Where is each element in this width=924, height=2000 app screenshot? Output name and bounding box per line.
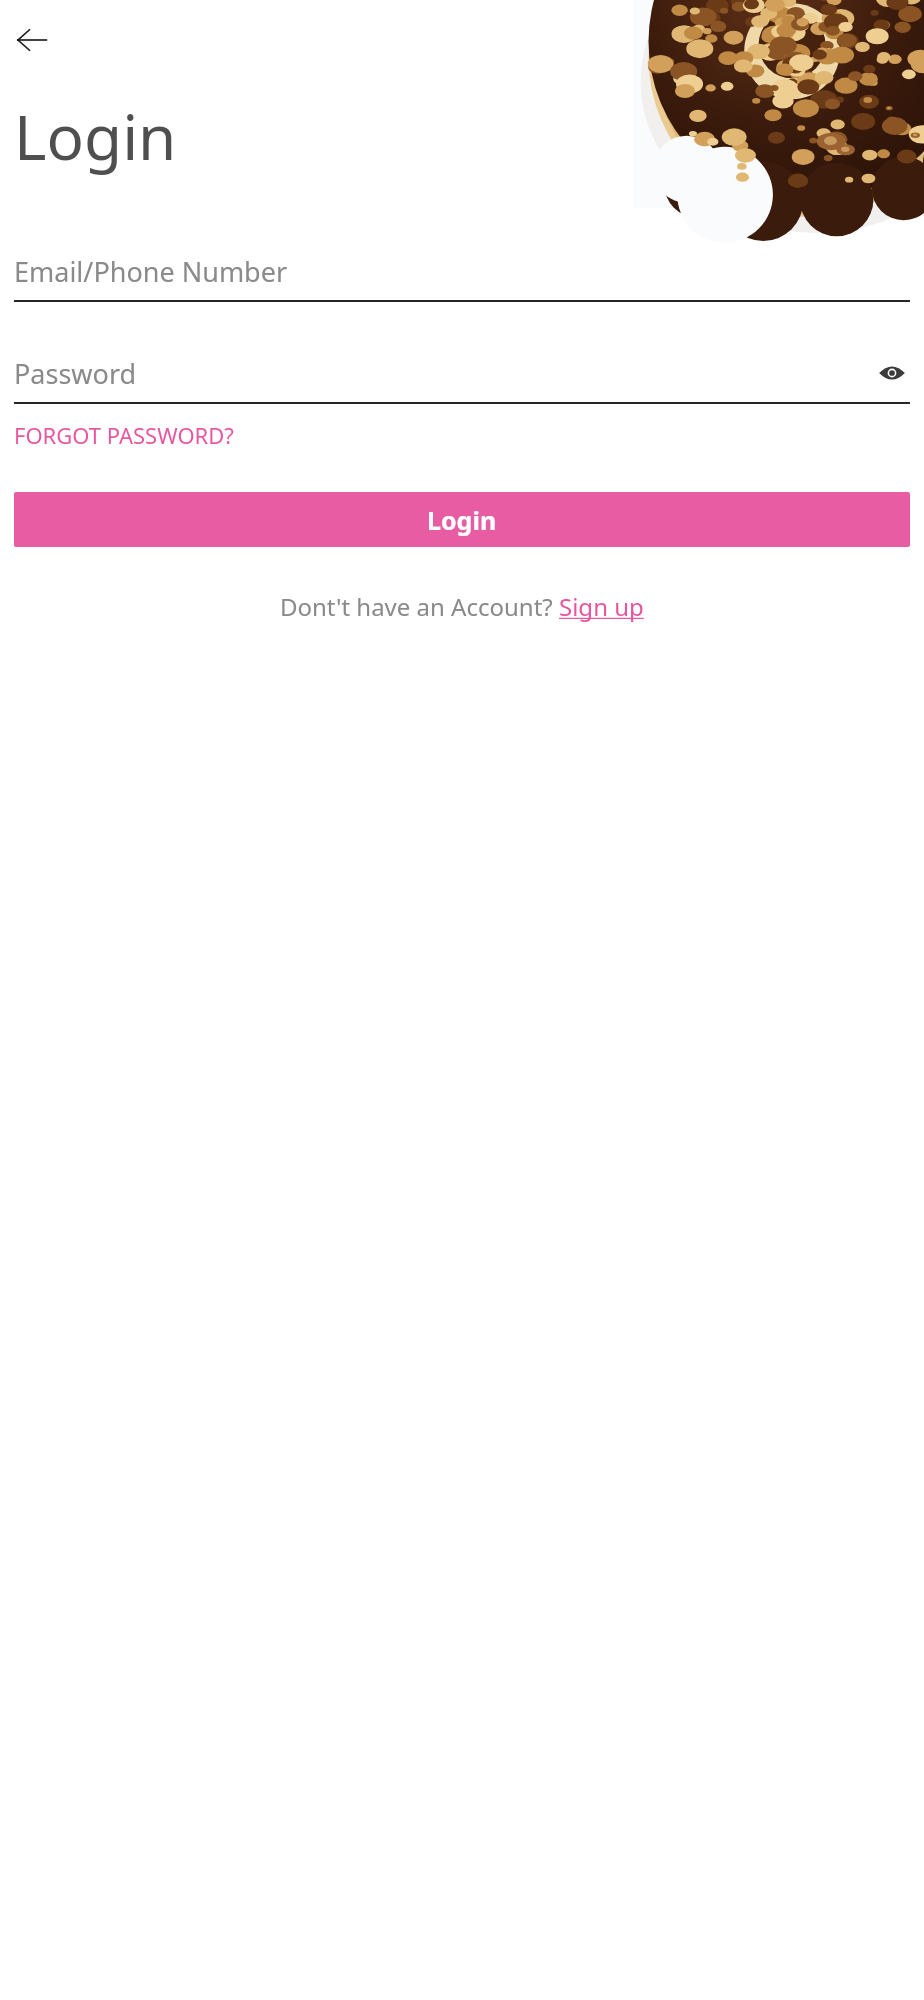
button[interactable]: FORGOT PASSWORD?	[14, 420, 234, 450]
button[interactable]: Show password	[874, 355, 910, 391]
staticText: FORGOT PASSWORD?	[14, 420, 234, 450]
button[interactable]: Dont't have an Account? Sign up	[14, 590, 910, 623]
staticText: Dont't have an Account? Sign up	[280, 590, 644, 623]
staticText: Password	[14, 355, 137, 392]
button[interactable]: Back	[6, 14, 58, 66]
staticText: Login	[427, 503, 497, 537]
button[interactable]: Password	[14, 350, 910, 396]
staticText: Email/Phone Number	[14, 253, 288, 290]
staticText: Login	[14, 94, 177, 178]
button[interactable]: Login	[14, 492, 910, 547]
button[interactable]: Email/Phone Number	[14, 248, 910, 294]
